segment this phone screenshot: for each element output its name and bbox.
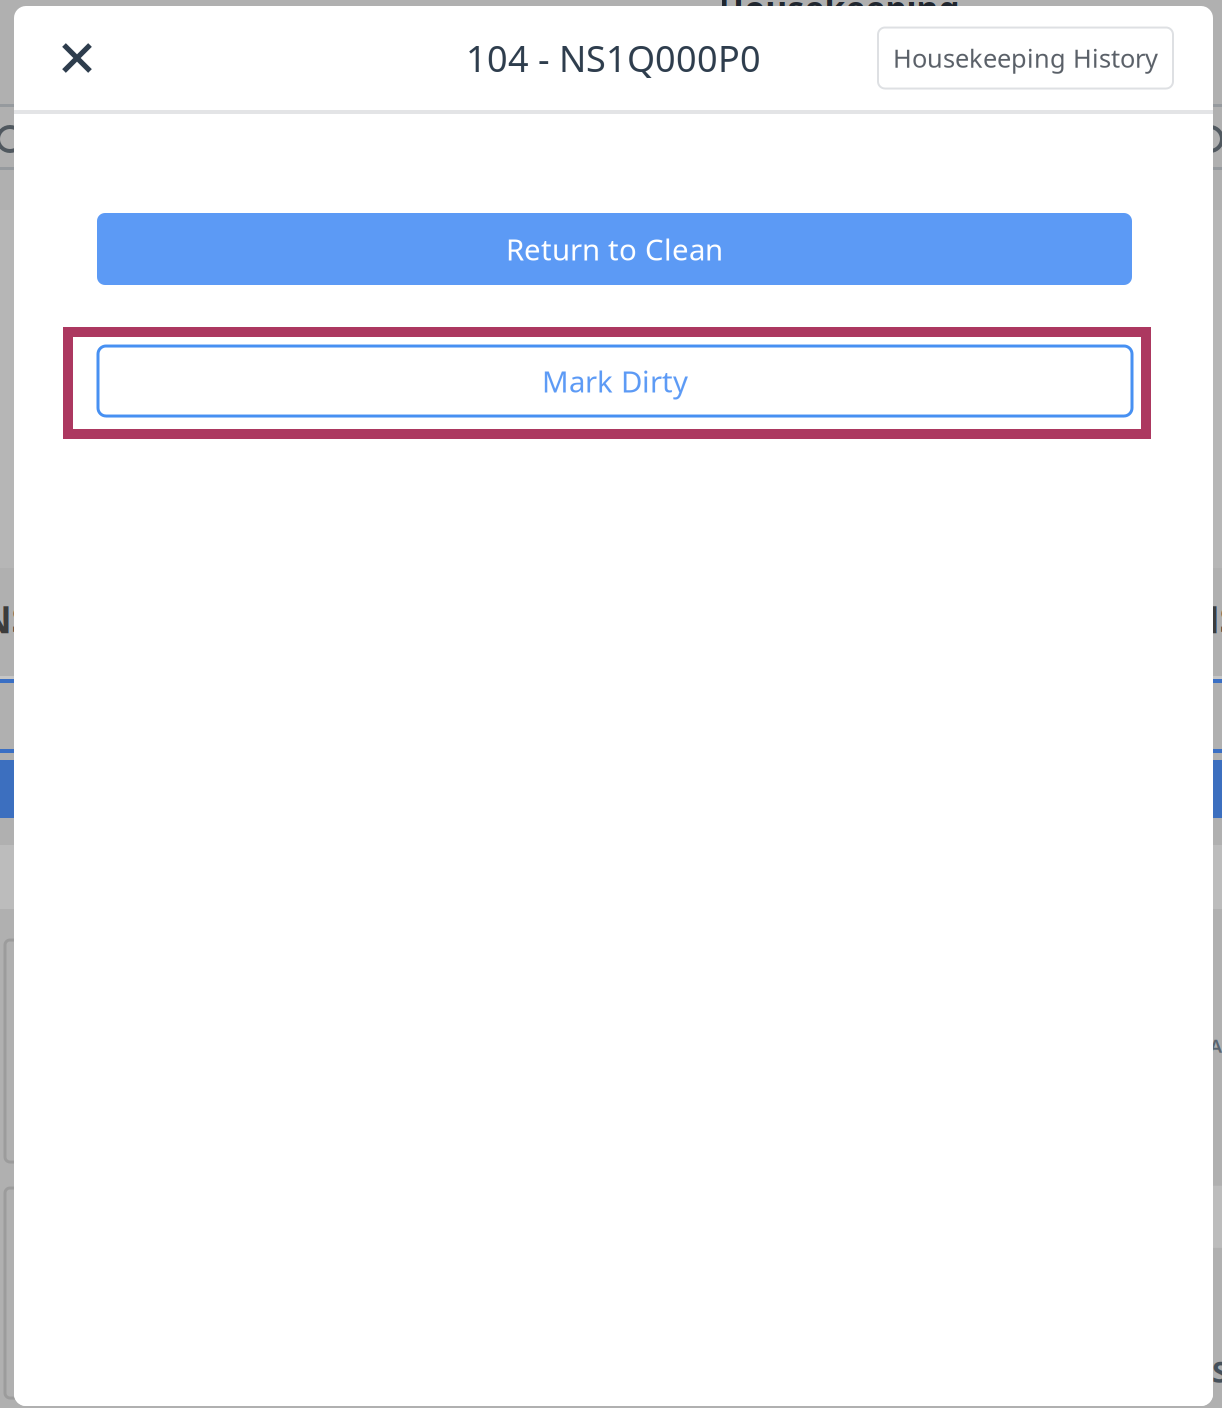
staticText: NS bbox=[0, 594, 32, 644]
staticText: Mark Dirty bbox=[542, 361, 688, 400]
staticText: Housekeeping bbox=[718, 0, 959, 30]
button[interactable]: Return to Clean bbox=[97, 213, 1132, 285]
staticText: Return to Clean bbox=[506, 229, 723, 268]
staticText: NS bbox=[1189, 594, 1222, 644]
button[interactable]: Housekeeping History bbox=[878, 27, 1173, 88]
button[interactable]: Close bbox=[46, 27, 108, 89]
staticText: Housekeeping History bbox=[893, 41, 1158, 75]
button[interactable]: Mark Dirty bbox=[98, 346, 1132, 416]
staticText: 104 - NS1Q000P0 bbox=[466, 34, 761, 82]
staticText: A bbox=[1209, 1033, 1222, 1058]
staticText: S bbox=[1212, 1352, 1222, 1391]
